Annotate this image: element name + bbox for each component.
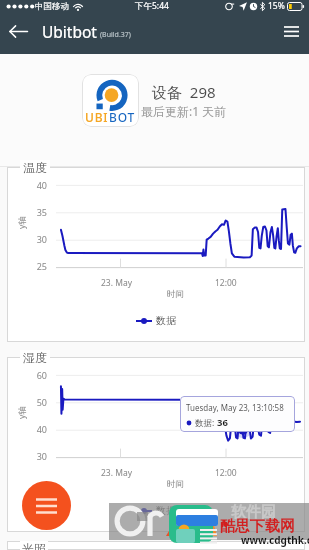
staticText: 软件园 <box>231 503 276 522</box>
staticText: 12:00 <box>215 467 237 479</box>
button[interactable] <box>7 357 305 532</box>
staticText: 30 <box>7 233 47 245</box>
staticText: 23. May <box>101 277 133 289</box>
staticText: 下午5:44 <box>135 0 169 12</box>
staticText: 23. May <box>101 467 133 479</box>
button[interactable]: 数据 <box>136 504 176 517</box>
staticText: Tuesday, May 23, 13:10:58 <box>186 402 284 413</box>
staticText: 时间 <box>167 479 184 490</box>
staticText: 湿度 <box>23 350 47 365</box>
staticText: 设备 298 <box>152 82 216 102</box>
staticText: BOT <box>109 109 136 125</box>
staticText: 35 <box>7 206 47 218</box>
staticText: y轴 <box>16 216 28 229</box>
button[interactable] <box>7 167 305 342</box>
staticText: 时间 <box>167 289 184 300</box>
button[interactable]: Menu <box>273 18 309 45</box>
staticText: Ubitbot <box>42 21 97 42</box>
staticText: 30 <box>7 450 47 462</box>
staticText: www.cdgthk.com <box>241 533 309 547</box>
staticText: y轴 <box>16 406 28 419</box>
staticText: 温度 <box>23 160 47 175</box>
button[interactable]: 数据 <box>136 314 176 327</box>
button[interactable]: Back <box>0 18 36 45</box>
staticText: 40 <box>7 179 47 191</box>
staticText: 数据 <box>156 504 176 517</box>
staticText: 最后更新:1 天前 <box>141 103 227 119</box>
button[interactable]: Open menu <box>22 481 71 530</box>
staticText: 50 <box>7 396 47 408</box>
staticText: 40 <box>7 423 47 435</box>
staticText: 数据 <box>156 314 176 327</box>
staticText: 酷思下载网 <box>220 517 295 536</box>
staticText: UBI <box>85 109 109 125</box>
staticText: 中国移动 <box>35 1 69 12</box>
staticText: 15% <box>268 0 285 12</box>
staticText: 光照 <box>22 541 46 550</box>
staticText: (Build.37) <box>100 30 131 40</box>
staticText: 25 <box>7 260 47 272</box>
staticText: 数据: <box>195 417 217 429</box>
staticText: 36 <box>217 416 228 429</box>
staticText: 60 <box>7 369 47 381</box>
staticText: 12:00 <box>215 277 237 289</box>
